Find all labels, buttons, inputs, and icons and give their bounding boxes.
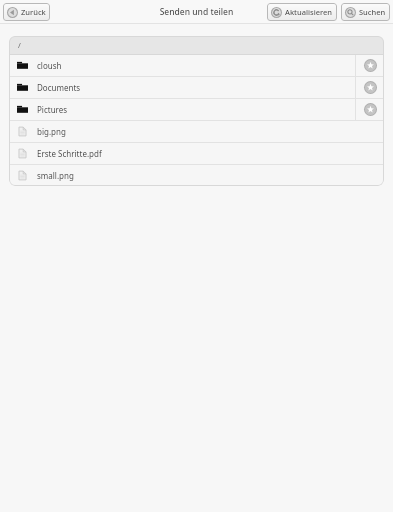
button[interactable]: Documents xyxy=(9,77,384,98)
button[interactable]: big.png xyxy=(9,121,384,142)
staticText: small.png xyxy=(37,170,74,181)
button[interactable]: small.png xyxy=(9,165,384,186)
button[interactable]: Teilen xyxy=(356,55,384,76)
staticText: Zurück xyxy=(21,7,46,17)
staticText: Documents xyxy=(37,82,81,93)
button[interactable]: Zurück xyxy=(3,3,50,21)
staticText: cloush xyxy=(37,60,62,71)
button[interactable]: cloush xyxy=(9,55,384,76)
staticText: / xyxy=(18,40,21,50)
button[interactable]: Teilen xyxy=(356,77,384,98)
button[interactable]: Pictures xyxy=(9,99,384,120)
button[interactable]: Aktualisieren xyxy=(267,3,337,21)
button[interactable]: Erste Schritte.pdf xyxy=(9,143,384,164)
staticText: Senden und teilen xyxy=(0,6,393,18)
staticText: Erste Schritte.pdf xyxy=(37,148,102,159)
staticText: Suchen xyxy=(359,7,386,17)
staticText: Aktualisieren xyxy=(285,7,333,17)
staticText: big.png xyxy=(37,126,66,137)
button[interactable]: Suchen xyxy=(341,3,390,21)
button[interactable]: Teilen xyxy=(356,99,384,120)
button[interactable]: / xyxy=(9,36,384,54)
staticText: Pictures xyxy=(37,104,68,115)
